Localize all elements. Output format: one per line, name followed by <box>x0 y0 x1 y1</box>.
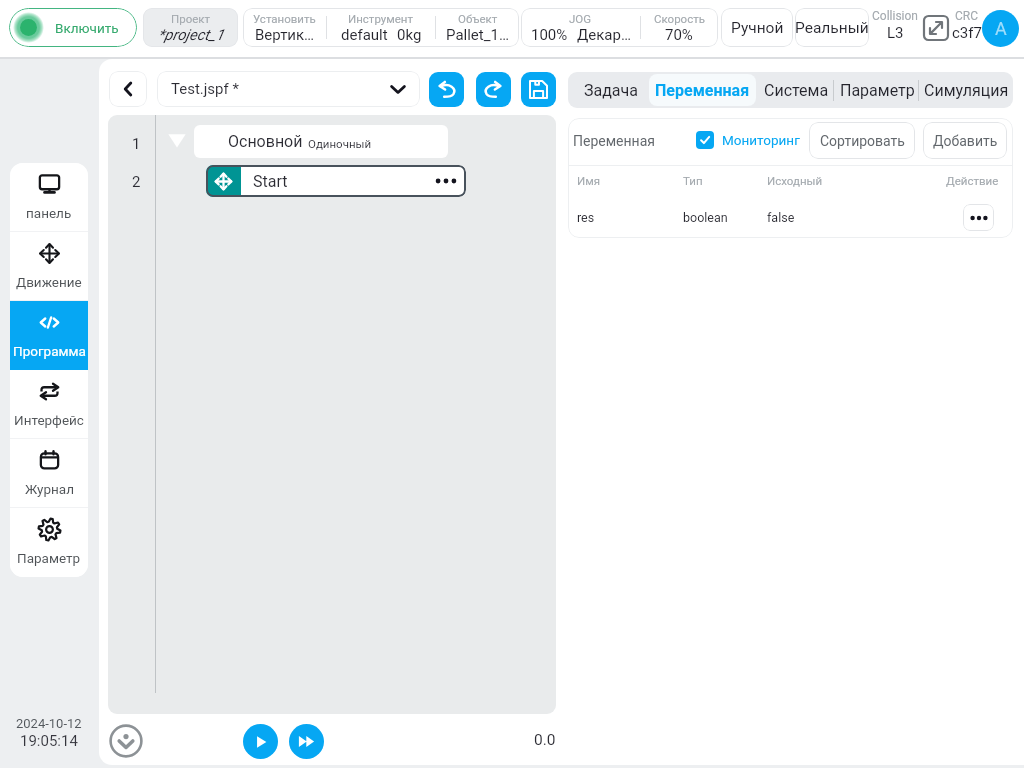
staticText: c3f7 <box>952 24 982 42</box>
button[interactable]: Система <box>758 72 834 108</box>
staticText: Pallet_1… <box>446 26 509 44</box>
staticText: Параметр <box>17 550 81 566</box>
staticText: Ручной <box>731 19 784 37</box>
staticText: Симуляция <box>924 81 1009 100</box>
staticText: boolean <box>683 210 728 225</box>
staticText: 0.0 <box>534 731 556 749</box>
staticText: Действие <box>946 174 999 187</box>
staticText: default <box>341 26 388 44</box>
staticText: 0kg <box>397 26 422 44</box>
staticText: 1 <box>132 135 141 153</box>
staticText: *project_1 <box>158 26 224 44</box>
button[interactable]: Ручной <box>721 8 793 47</box>
button[interactable]: Симуляция <box>920 72 1013 108</box>
staticText: Скорость <box>654 12 705 25</box>
button[interactable]: Collapse <box>109 724 143 758</box>
button[interactable]: Переменная <box>649 74 756 106</box>
button[interactable]: Test.jspf * <box>157 71 420 107</box>
button[interactable]: Интерфейс <box>10 370 88 439</box>
staticText: Объект <box>458 12 498 25</box>
staticText: Проект <box>171 12 211 25</box>
staticText: Программа <box>13 343 86 359</box>
staticText: Start <box>253 172 288 191</box>
button[interactable]: Start <box>206 165 466 197</box>
staticText: Collision <box>872 9 918 23</box>
staticText: Сортировать <box>820 133 905 149</box>
staticText: Интерфейс <box>14 412 84 428</box>
staticText: Вертик… <box>255 26 315 44</box>
button[interactable]: Задача <box>576 72 645 108</box>
staticText: Тип <box>683 174 703 187</box>
button[interactable]: More <box>963 204 994 231</box>
staticText: Декар… <box>577 26 631 44</box>
button[interactable]: панель <box>10 163 88 232</box>
staticText: Основной <box>228 132 303 151</box>
button[interactable]: Включить <box>9 8 137 47</box>
button[interactable]: Fullscreen <box>921 13 951 43</box>
button[interactable]: Мониторинг <box>696 131 800 149</box>
staticText: CRC <box>955 9 979 23</box>
staticText: Включить <box>55 20 119 36</box>
staticText: Движение <box>16 274 82 290</box>
button[interactable]: Fast forward <box>289 724 324 759</box>
button[interactable]: Основной <box>194 125 448 158</box>
button[interactable]: res <box>568 202 1013 238</box>
staticText: 100% <box>531 26 568 44</box>
staticText: Система <box>764 81 829 100</box>
staticText: Исходный <box>767 174 823 187</box>
button[interactable]: A <box>982 10 1019 47</box>
button[interactable]: Сортировать <box>809 122 915 159</box>
button[interactable]: Программа <box>10 301 88 370</box>
staticText: res <box>577 210 595 225</box>
button[interactable]: Проект <box>143 8 238 47</box>
staticText: L3 <box>887 24 904 42</box>
button[interactable]: Параметр <box>10 508 88 577</box>
staticText: 2024-10-12 <box>16 716 82 731</box>
staticText: JOG <box>569 12 592 25</box>
staticText: панель <box>26 205 72 221</box>
staticText: false <box>767 210 795 225</box>
staticText: 2 <box>132 173 141 191</box>
staticText: Установить <box>253 12 316 25</box>
staticText: Одиночный <box>308 137 372 150</box>
staticText: 70% <box>665 26 693 44</box>
staticText: Параметр <box>840 81 915 100</box>
staticText: Переменная <box>655 81 750 100</box>
staticText: Инструмент <box>348 12 414 25</box>
button[interactable]: Save <box>521 72 556 107</box>
staticText: Добавить <box>933 133 998 149</box>
button[interactable]: Журнал <box>10 439 88 508</box>
button[interactable]: Redo <box>476 72 511 107</box>
button[interactable]: Реальный <box>795 8 869 47</box>
button[interactable]: Добавить <box>923 122 1007 159</box>
button[interactable]: Параметр <box>835 72 919 108</box>
button[interactable]: Back <box>109 71 147 107</box>
staticText: Имя <box>577 174 601 187</box>
staticText: Мониторинг <box>722 132 800 148</box>
button[interactable]: Движение <box>10 232 88 301</box>
button[interactable]: Play <box>243 724 278 759</box>
staticText: A <box>995 18 1007 39</box>
staticText: Реальный <box>795 19 869 37</box>
staticText: Переменная <box>573 133 655 149</box>
staticText: Задача <box>584 81 638 100</box>
staticText: 19:05:14 <box>20 732 78 750</box>
staticText: Test.jspf * <box>171 80 239 98</box>
button[interactable]: Undo <box>429 72 464 107</box>
staticText: Журнал <box>25 481 74 497</box>
